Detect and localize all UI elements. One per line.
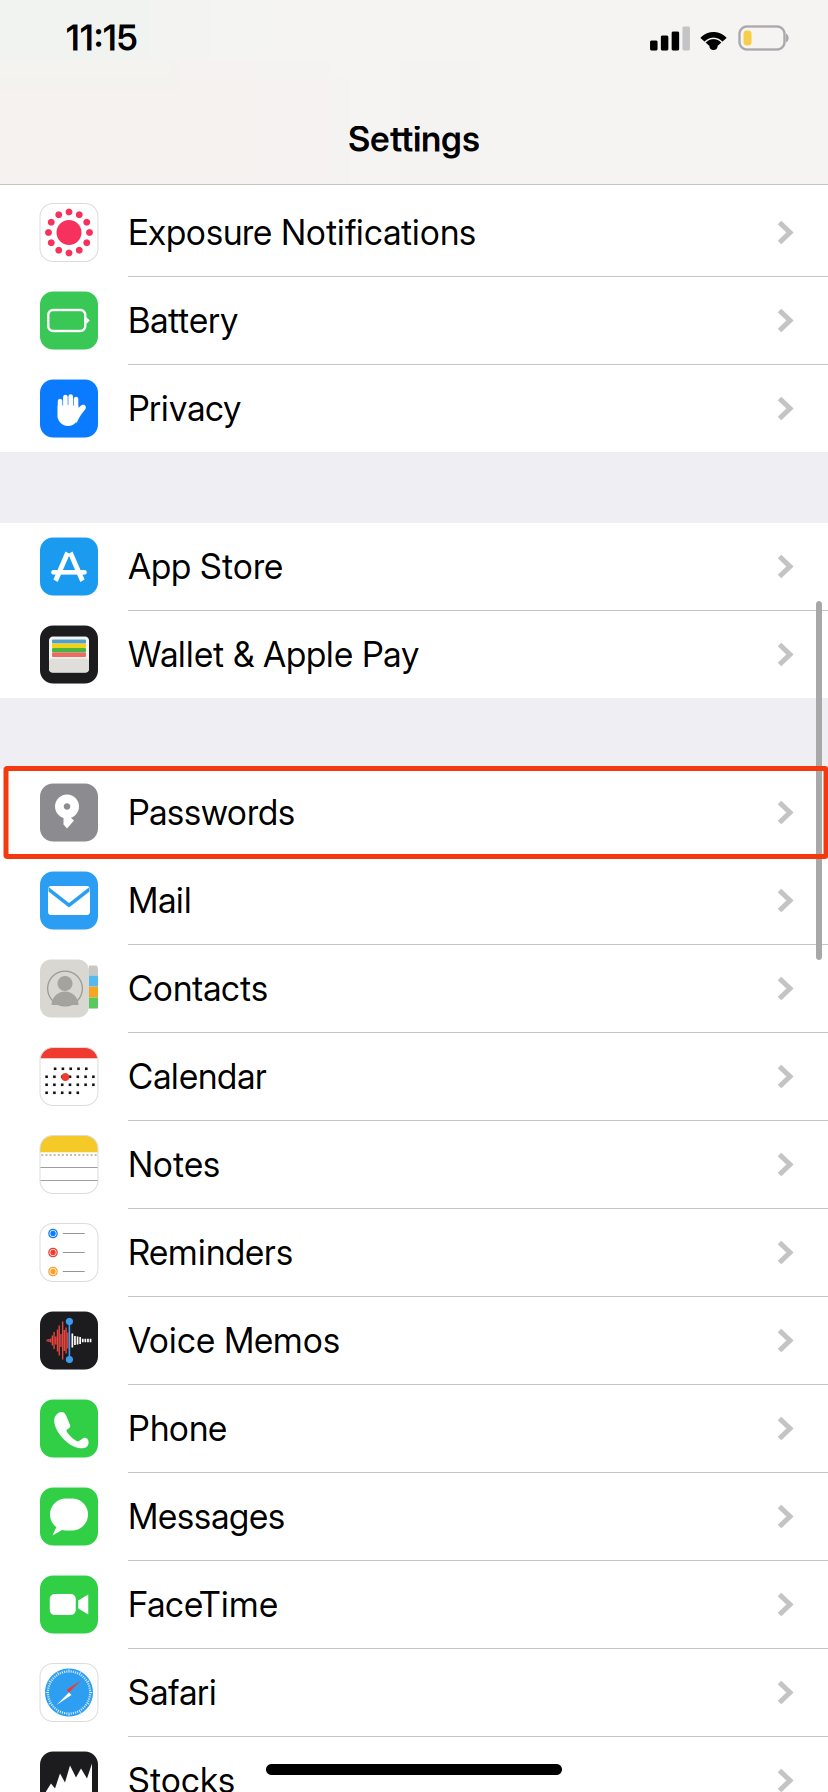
- staticText: Calendar: [128, 1055, 267, 1097]
- staticText: 11:15: [66, 17, 138, 59]
- staticText: Battery: [128, 299, 238, 341]
- button[interactable]: Safari: [0, 1649, 828, 1736]
- button[interactable]: Mail: [0, 857, 828, 944]
- staticText: Safari: [128, 1671, 217, 1713]
- button[interactable]: Contacts: [0, 945, 828, 1032]
- staticText: Mail: [128, 879, 192, 921]
- button[interactable]: Calendar: [0, 1033, 828, 1120]
- staticText: Voice Memos: [128, 1319, 340, 1361]
- button[interactable]: FaceTime: [0, 1561, 828, 1648]
- button[interactable]: Exposure Notifications: [0, 189, 828, 276]
- staticText: Reminders: [128, 1231, 293, 1273]
- staticText: Passwords: [128, 791, 295, 833]
- button[interactable]: Notes: [0, 1121, 828, 1208]
- staticText: Exposure Notifications: [128, 211, 476, 253]
- button[interactable]: Battery: [0, 277, 828, 364]
- button[interactable]: Voice Memos: [0, 1297, 828, 1384]
- staticText: Phone: [128, 1407, 227, 1449]
- staticText: Wallet & Apple Pay: [128, 633, 419, 675]
- staticText: Settings: [348, 118, 480, 160]
- staticText: App Store: [128, 545, 283, 587]
- button[interactable]: Privacy: [0, 365, 828, 452]
- button[interactable]: Wallet & Apple Pay: [0, 611, 828, 698]
- staticText: Stocks: [128, 1759, 235, 1792]
- button[interactable]: App Store: [0, 523, 828, 610]
- button[interactable]: Reminders: [0, 1209, 828, 1296]
- staticText: Privacy: [128, 387, 241, 429]
- staticText: Messages: [128, 1495, 285, 1537]
- button[interactable]: Messages: [0, 1473, 828, 1560]
- button[interactable]: Phone: [0, 1385, 828, 1472]
- staticText: Contacts: [128, 967, 268, 1009]
- staticText: Notes: [128, 1143, 220, 1185]
- button[interactable]: Passwords: [0, 769, 828, 856]
- staticText: FaceTime: [128, 1583, 278, 1625]
- button[interactable]: Stocks: [0, 1737, 828, 1792]
